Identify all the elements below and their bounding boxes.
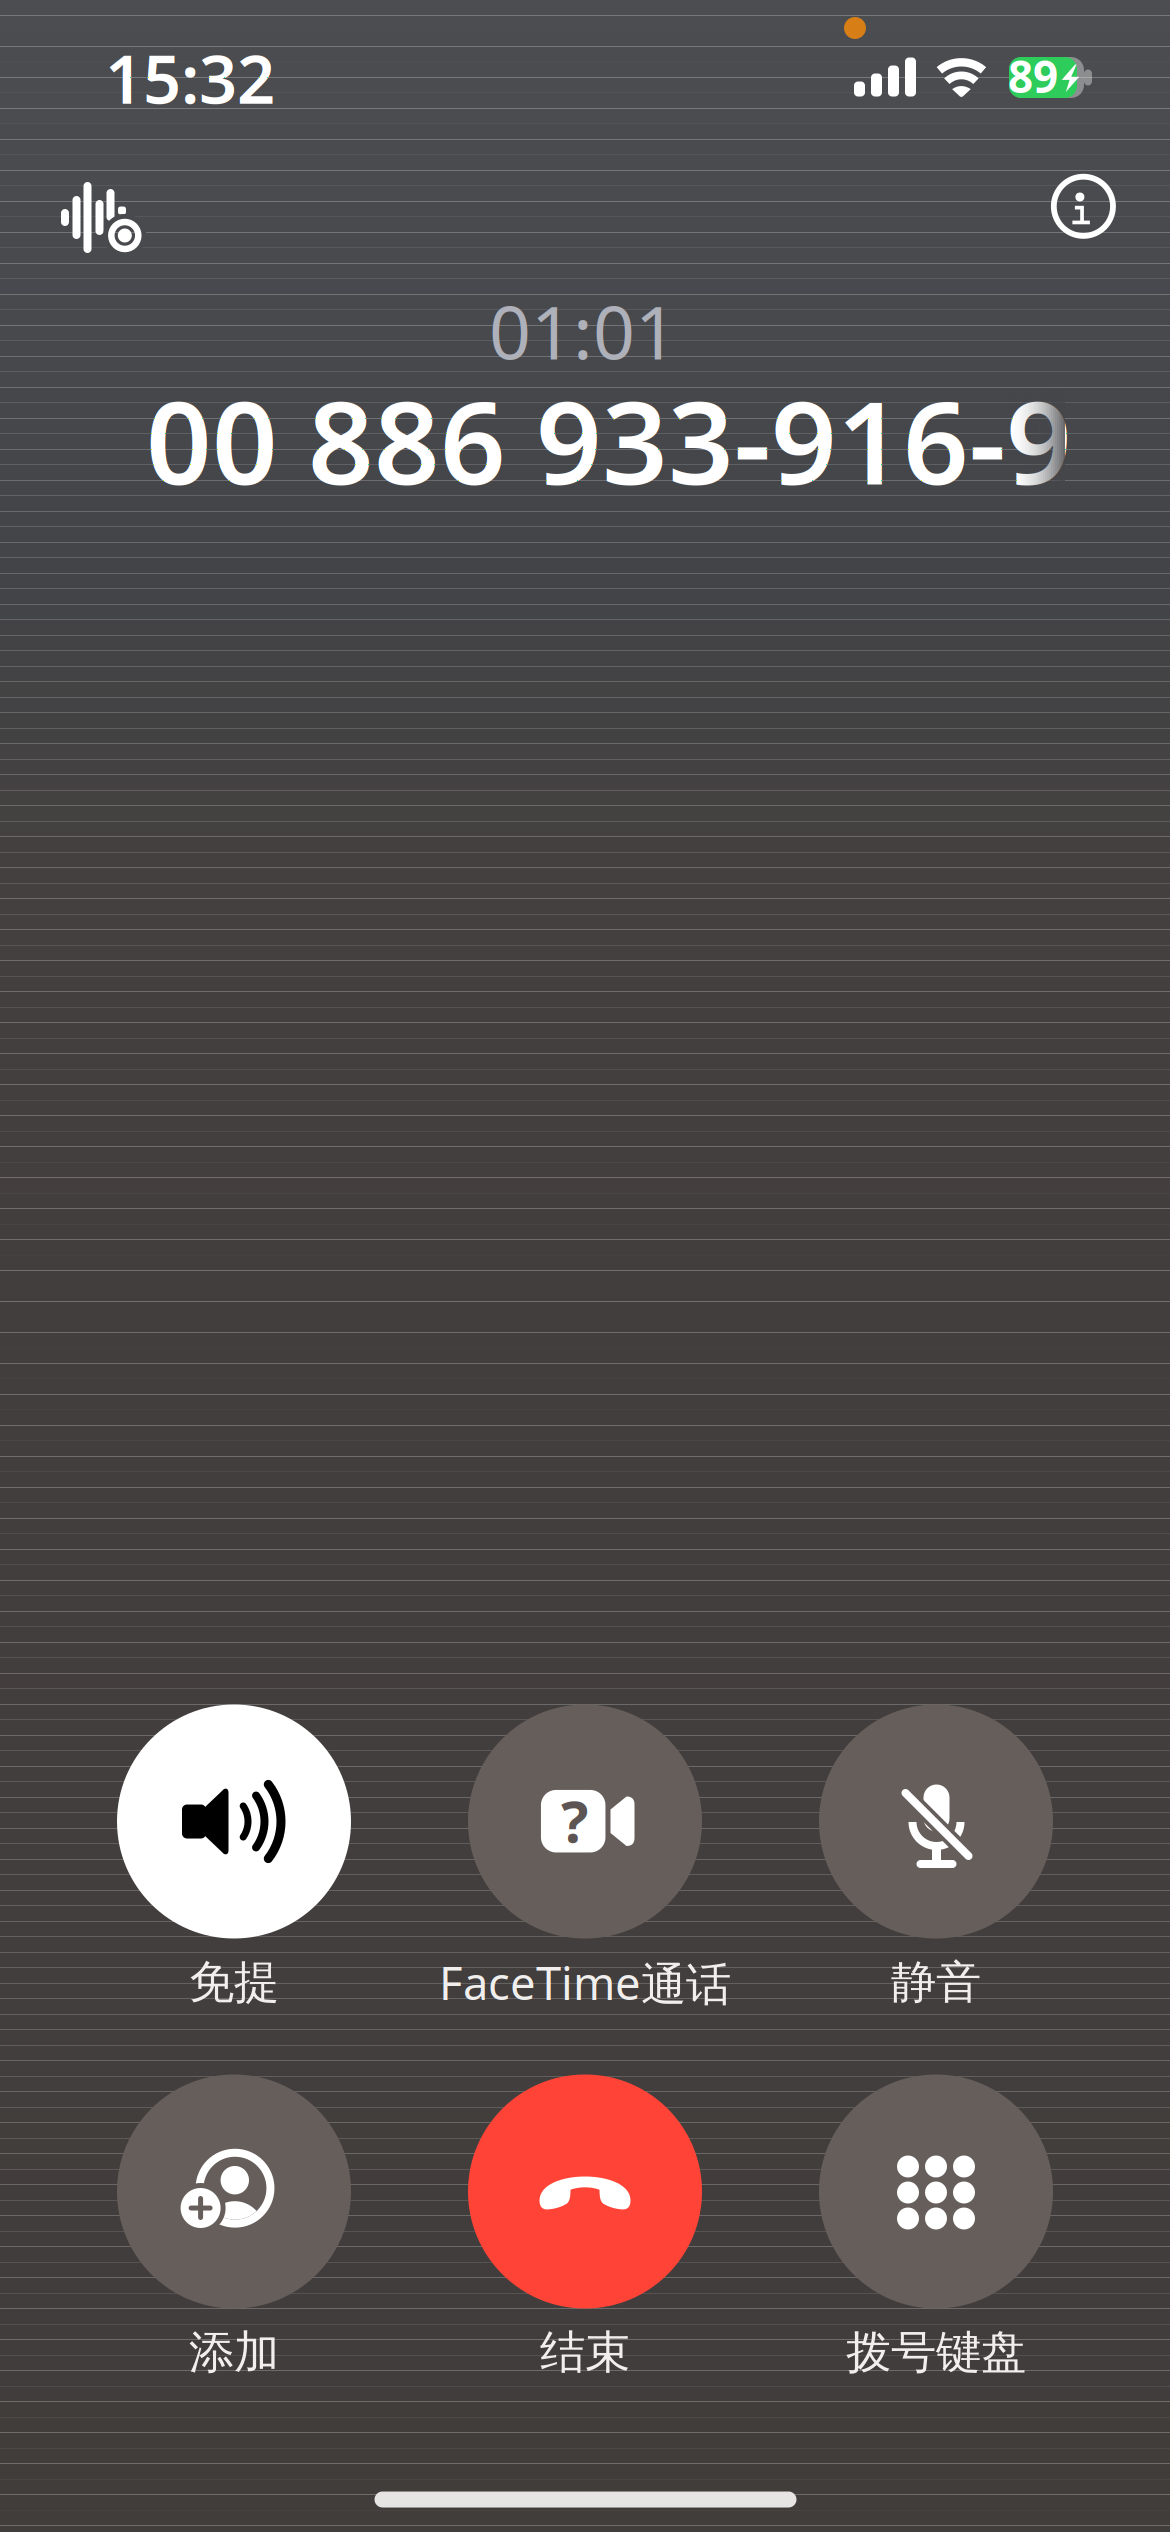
staticText: ? [561,1782,588,1858]
staticText: 免提 [189,1955,279,2010]
button[interactable]: Call info [1037,160,1129,252]
staticText: 结束 [540,2325,630,2380]
staticText: 89 [1008,47,1058,105]
button[interactable]: Live voicemail [46,182,150,280]
button[interactable]: 静音 [756,1703,1116,2009]
button[interactable]: 结束 [405,2073,765,2379]
staticText: 00 886 933-916-9 [146,364,1072,516]
staticText: FaceTime通话 [439,1952,731,2013]
staticText: 静音 [891,1955,981,2010]
button[interactable]: 添加 [54,2073,414,2379]
staticText: 添加 [189,2325,279,2380]
button[interactable]: 拨号键盘 [756,2073,1116,2379]
button[interactable]: 免提 [54,1703,414,2009]
staticText: 15:32 [105,34,275,122]
staticText: 拨号键盘 [846,2325,1026,2380]
staticText: 01:01 [489,282,677,380]
button[interactable]: ? [405,1703,765,2009]
